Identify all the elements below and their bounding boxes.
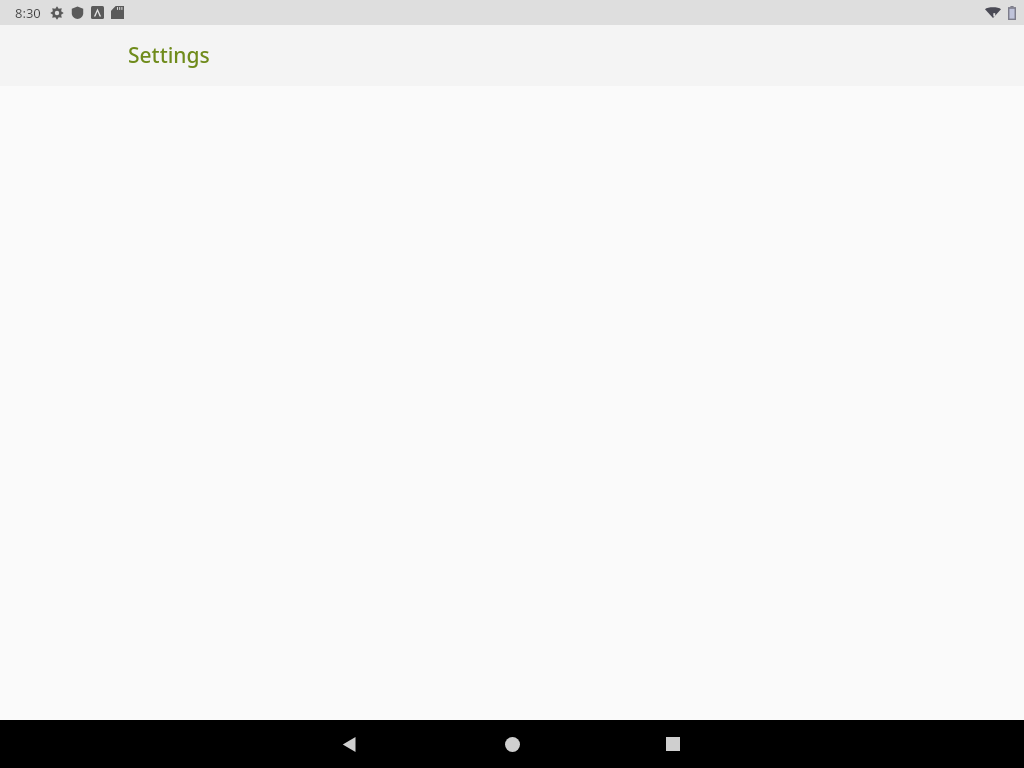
- button[interactable]: Home: [488, 720, 536, 768]
- button[interactable]: Recent apps: [649, 720, 697, 768]
- staticText: Settings: [128, 41, 210, 70]
- staticText: 8:30: [15, 4, 41, 22]
- button[interactable]: Back: [325, 720, 373, 768]
